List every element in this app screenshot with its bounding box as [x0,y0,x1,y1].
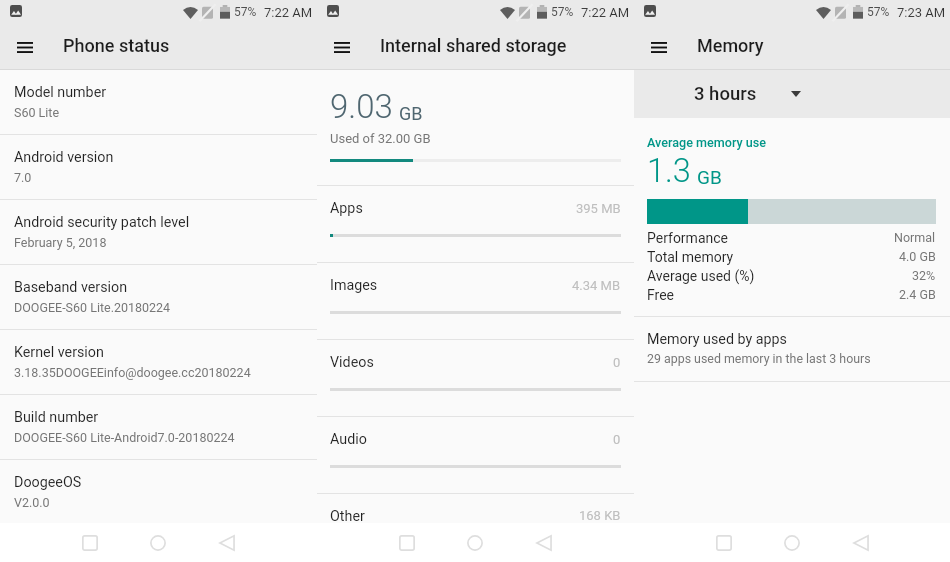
button[interactable]: Home [775,526,809,560]
staticText: Apps [330,200,363,217]
button[interactable]: Android version [0,135,317,199]
staticText: Android security patch level [14,214,190,231]
button[interactable]: Back [210,526,244,560]
staticText: 57% [867,5,890,19]
staticText: Average memory use [647,135,767,150]
button[interactable]: 3 hours [634,70,950,118]
staticText: Internal shared storage [380,35,567,56]
button[interactable]: Other [317,494,634,523]
staticText: Free [647,287,675,303]
staticText: Kernel version [14,344,104,361]
button[interactable]: Recent apps [73,526,107,560]
staticText: 7:22 AM [264,5,313,20]
staticText: Used of 32.00 GB [330,131,431,146]
staticText: 57% [551,5,574,19]
staticText: 7:22 AM [581,5,630,20]
staticText: 168 KB [579,508,621,523]
staticText: 0 [613,355,621,370]
staticText: Phone status [63,35,170,56]
button[interactable]: Audio [317,417,634,493]
staticText: 29 apps used memory in the last 3 hours [647,351,871,366]
staticText: GB [399,103,423,124]
staticText: 3 hours [694,83,757,105]
staticText: February 5, 2018 [14,235,107,250]
button[interactable]: Model number [0,70,317,134]
button[interactable]: Memory used by apps [634,317,950,381]
button[interactable]: Open navigation menu [324,29,360,65]
staticText: 7:23 AM [897,5,946,20]
staticText: 0 [613,432,621,447]
button[interactable]: Recent apps [707,526,741,560]
staticText: 3.18.35DOOGEEinfo@doogee.cc20180224 [14,365,251,380]
button[interactable]: Baseband version [0,265,317,329]
button[interactable]: Back [527,526,561,560]
staticText: 1.3 [647,152,691,190]
button[interactable]: DoogeeOS [0,460,317,523]
staticText: 57% [234,5,257,19]
staticText: Total memory [647,249,734,265]
staticText: 4.0 GB [899,249,936,264]
button[interactable]: Android security patch level [0,200,317,264]
staticText: Android version [14,149,114,166]
staticText: 4.34 MB [572,278,621,293]
staticText: GB [697,166,722,188]
staticText: Normal [894,230,936,245]
staticText: Average used (%) [647,268,755,284]
staticText: DOOGEE-S60 Lite-Android7.0-20180224 [14,430,235,445]
staticText: 2.4 GB [899,287,936,302]
staticText: Memory [697,35,764,56]
button[interactable]: Back [844,526,878,560]
button[interactable]: Home [141,526,175,560]
staticText: 395 MB [576,201,621,216]
button[interactable]: Open navigation menu [7,29,43,65]
staticText: 32% [912,268,936,283]
staticText: Images [330,277,378,294]
button[interactable]: Videos [317,340,634,416]
staticText: DOOGEE-S60 Lite.20180224 [14,300,171,315]
staticText: Audio [330,431,367,448]
staticText: Memory used by apps [647,331,787,348]
button[interactable]: Recent apps [390,526,424,560]
staticText: Baseband version [14,279,128,296]
staticText: S60 Lite [14,105,60,120]
staticText: Other [330,508,365,523]
staticText: Performance [647,230,728,246]
button[interactable]: Build number [0,395,317,459]
button[interactable]: Kernel version [0,330,317,394]
staticText: DoogeeOS [14,474,82,491]
button[interactable]: Apps [317,186,634,262]
staticText: 9.03 [330,87,393,126]
button[interactable]: Images [317,263,634,339]
staticText: Build number [14,409,99,426]
staticText: 7.0 [14,170,32,185]
staticText: Videos [330,354,374,371]
staticText: Model number [14,84,107,101]
button[interactable]: Home [458,526,492,560]
button[interactable]: Open navigation menu [641,29,677,65]
staticText: V2.0.0 [14,495,50,510]
